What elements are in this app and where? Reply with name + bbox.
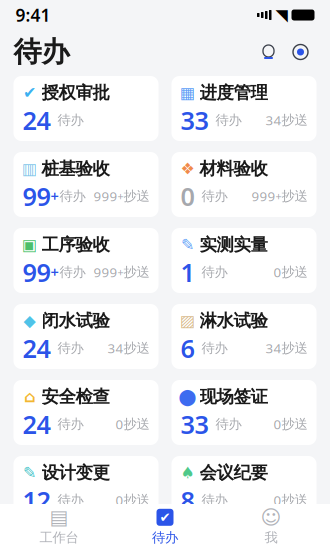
- staticText: ☺: [260, 506, 281, 529]
- staticText: 我: [264, 529, 277, 546]
- staticText: 淋水试验: [199, 310, 267, 331]
- staticText: ▨: [180, 312, 195, 330]
- staticText: 1: [180, 255, 194, 289]
- button[interactable]: ☺: [218, 505, 324, 549]
- staticText: ▣: [22, 236, 37, 254]
- staticText: 34: [265, 111, 281, 129]
- staticText: ◥: [275, 6, 287, 24]
- staticText: 抄送: [281, 264, 307, 280]
- staticText: 待办: [197, 188, 227, 204]
- button[interactable]: ▤: [6, 505, 112, 549]
- staticText: 待办: [13, 35, 69, 69]
- button[interactable]: ❖: [171, 152, 316, 217]
- staticText: 待办: [59, 264, 85, 280]
- staticText: 待办: [53, 112, 83, 128]
- staticText: 待办: [197, 264, 227, 280]
- staticText: 工序验收: [41, 234, 109, 255]
- staticText: 0: [115, 491, 123, 509]
- staticText: ▦: [180, 84, 195, 102]
- staticText: 0: [273, 263, 281, 281]
- button[interactable]: ✎: [13, 456, 158, 521]
- staticText: 待办: [197, 340, 227, 356]
- staticText: ❖: [180, 160, 194, 178]
- button[interactable]: ▨: [171, 304, 316, 369]
- staticText: 待办: [59, 188, 85, 204]
- staticText: 34: [265, 339, 281, 357]
- button[interactable]: ▦: [171, 76, 316, 141]
- button[interactable]: ♠: [171, 456, 316, 521]
- staticText: 设计变更: [41, 462, 109, 483]
- staticText: 待办: [53, 492, 83, 508]
- staticText: 34: [107, 339, 123, 357]
- staticText: +: [117, 265, 123, 279]
- staticText: ◆: [23, 312, 35, 330]
- staticText: 进度管理: [199, 82, 267, 103]
- staticText: +: [50, 262, 58, 282]
- staticText: 抄送: [123, 264, 149, 280]
- button[interactable]: 通知: [252, 36, 284, 68]
- staticText: 抄送: [123, 492, 149, 508]
- staticText: 待办: [211, 416, 241, 432]
- staticText: ⌂: [24, 388, 35, 406]
- staticText: 抄送: [281, 340, 307, 356]
- staticText: +: [117, 189, 123, 203]
- staticText: 待办: [152, 529, 178, 546]
- button[interactable]: ✎: [171, 228, 316, 293]
- staticText: ♠: [180, 464, 194, 482]
- staticText: 工作台: [39, 529, 78, 546]
- staticText: ▥: [22, 160, 37, 178]
- staticText: 现场签证: [199, 386, 267, 407]
- staticText: 抄送: [281, 112, 307, 128]
- staticText: 0: [273, 415, 281, 433]
- button[interactable]: ⬤: [171, 380, 316, 445]
- staticText: 抄送: [123, 188, 149, 204]
- staticText: 0: [115, 415, 123, 433]
- staticText: 桩基验收: [41, 158, 109, 179]
- staticText: 99: [22, 255, 50, 289]
- staticText: 待办: [53, 416, 83, 432]
- staticText: 33: [180, 103, 208, 137]
- staticText: 抄送: [281, 188, 307, 204]
- staticText: +: [50, 186, 58, 206]
- staticText: 999: [251, 187, 275, 205]
- staticText: 抄送: [281, 416, 307, 432]
- staticText: 24: [22, 407, 50, 441]
- staticText: 9:41: [15, 3, 50, 26]
- staticText: 8: [180, 483, 194, 517]
- staticText: 999: [93, 187, 117, 205]
- staticText: 闭水试验: [41, 310, 109, 331]
- button[interactable]: ⌂: [13, 380, 158, 445]
- button[interactable]: ▥: [13, 152, 158, 217]
- button[interactable]: ✔: [13, 76, 158, 141]
- staticText: 24: [22, 331, 50, 365]
- staticText: 33: [180, 407, 208, 441]
- staticText: 授权审批: [41, 82, 109, 103]
- button[interactable]: ✔: [112, 505, 218, 549]
- staticText: 0: [180, 179, 194, 213]
- staticText: 24: [22, 103, 50, 137]
- staticText: ✔: [23, 84, 36, 102]
- staticText: 999: [93, 263, 117, 281]
- staticText: 0: [273, 491, 281, 509]
- staticText: +: [275, 189, 281, 203]
- staticText: 实测实量: [199, 234, 267, 255]
- staticText: 材料验收: [199, 158, 267, 179]
- button[interactable]: ◆: [13, 304, 158, 369]
- staticText: 待办: [211, 112, 241, 128]
- staticText: ✎: [23, 464, 36, 482]
- staticText: ✎: [181, 236, 194, 254]
- staticText: 12: [22, 483, 50, 517]
- staticText: ▤: [49, 506, 68, 529]
- staticText: ⬤: [178, 388, 196, 406]
- staticText: 待办: [197, 492, 227, 508]
- button[interactable]: ▣: [13, 228, 158, 293]
- button[interactable]: 设置: [284, 36, 316, 68]
- staticText: 安全检查: [41, 386, 109, 407]
- staticText: 抄送: [123, 416, 149, 432]
- staticText: 6: [180, 331, 194, 365]
- staticText: ✔: [159, 510, 170, 525]
- staticText: 抄送: [123, 340, 149, 356]
- staticText: 待办: [53, 340, 83, 356]
- staticText: 会议纪要: [199, 462, 267, 483]
- staticText: 99: [22, 179, 50, 213]
